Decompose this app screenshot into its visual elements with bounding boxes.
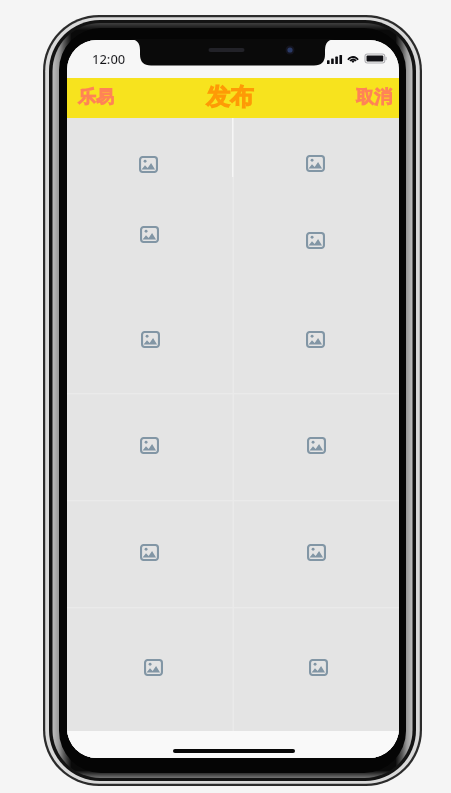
button[interactable]: Photo	[67, 288, 232, 393]
button[interactable]: Photo	[233, 288, 398, 393]
button[interactable]: Photo	[67, 118, 232, 210]
button[interactable]: Photo	[67, 210, 232, 288]
staticText: 12:00	[92, 50, 126, 68]
button[interactable]: Photo	[233, 607, 398, 731]
button[interactable]: Photo	[233, 210, 398, 288]
button[interactable]: 取消	[346, 78, 399, 117]
staticText: 取消	[356, 86, 392, 109]
button[interactable]: 乐易	[67, 78, 124, 117]
button[interactable]: Photo	[233, 118, 398, 210]
button[interactable]: Photo	[67, 607, 232, 731]
staticText: 发布	[206, 82, 254, 112]
button[interactable]: Photo	[67, 500, 232, 607]
button[interactable]: Photo	[233, 500, 398, 607]
staticText: 乐易	[78, 86, 114, 109]
button[interactable]: Photo	[67, 393, 232, 500]
button[interactable]: Photo	[233, 393, 398, 500]
